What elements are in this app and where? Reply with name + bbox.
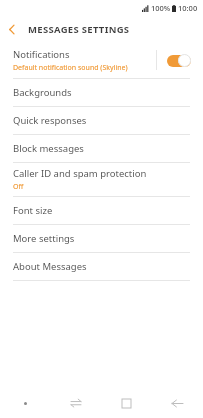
button[interactable]: About Messages: [0, 253, 203, 280]
staticText: Off: [13, 182, 24, 192]
staticText: Default notification sound (Skyline): [13, 63, 128, 73]
button[interactable]: Notifications: [0, 42, 203, 78]
button[interactable]: Caller ID and spam protection: [0, 163, 203, 196]
staticText: More settings: [13, 232, 75, 245]
button[interactable]: More settings: [0, 225, 203, 252]
button[interactable]: Notifications toggle: [167, 53, 192, 67]
button[interactable]: Back: [152, 388, 203, 418]
staticText: Quick responses: [13, 114, 87, 127]
staticText: Notifications: [13, 48, 70, 61]
button[interactable]: Font size: [0, 197, 203, 224]
staticText: Block messages: [13, 142, 84, 155]
staticText: About Messages: [13, 260, 87, 273]
staticText: Caller ID and spam protection: [13, 167, 147, 180]
staticText: Font size: [13, 204, 53, 217]
staticText: Backgrounds: [13, 86, 72, 99]
button[interactable]: Block messages: [0, 135, 203, 162]
button[interactable]: Quick responses: [0, 107, 203, 134]
button[interactable]: Backgrounds: [0, 79, 203, 106]
button[interactable]: Hide navigation bar: [0, 388, 50, 418]
button[interactable]: Back: [0, 17, 24, 41]
staticText: MESSAGES SETTINGS: [28, 23, 130, 36]
button[interactable]: Recent apps: [101, 388, 152, 418]
button[interactable]: Menu: [50, 388, 101, 418]
staticText: 100%: [151, 3, 171, 13]
staticText: 10:00: [178, 3, 198, 13]
